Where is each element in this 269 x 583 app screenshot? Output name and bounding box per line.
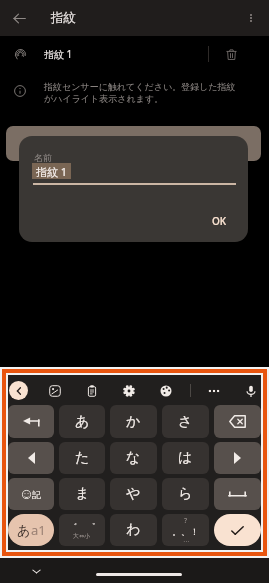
button[interactable]: Cursor right (214, 442, 261, 474)
staticText: ? (184, 516, 188, 526)
staticText: 指紋センサーに触れてください。登録した指紋がハイライト表示されます。 (44, 81, 240, 104)
staticText: た (75, 449, 90, 467)
staticText: OK (212, 214, 227, 228)
button[interactable]: More options (238, 0, 264, 36)
staticText: は (178, 449, 193, 467)
button[interactable]: や (110, 478, 157, 510)
staticText: か (126, 413, 141, 431)
button[interactable]: か (110, 405, 157, 438)
button[interactable]: Switch input mode (8, 514, 54, 546)
button[interactable]: は (162, 442, 209, 474)
button[interactable]: Settings (120, 382, 137, 399)
button[interactable]: た (59, 442, 105, 474)
button[interactable]: Dakuten and case (59, 514, 105, 546)
button[interactable]: Hide keyboard (26, 561, 46, 581)
staticText: 。、！ (172, 526, 199, 537)
staticText: あ (17, 522, 31, 538)
button[interactable]: ま (59, 478, 105, 510)
staticText: 記 (32, 489, 41, 500)
button[interactable]: さ (162, 405, 209, 438)
button[interactable]: わ (110, 514, 157, 546)
staticText: 指紋 1 (44, 47, 73, 61)
button[interactable]: Clipboard (83, 382, 100, 399)
button[interactable]: Themes (157, 382, 174, 399)
staticText: ま (75, 485, 90, 503)
staticText: な (126, 449, 141, 467)
staticText: 指紋 (51, 10, 76, 26)
staticText: ゛ ゜ (68, 520, 96, 532)
button[interactable]: Emoji and symbols (8, 478, 54, 510)
staticText: わ (126, 521, 141, 539)
button[interactable]: Delete (209, 38, 253, 70)
button[interactable]: Delete (214, 405, 261, 438)
button[interactable]: Cursor left (8, 442, 54, 474)
button[interactable]: 指紋 1 (0, 38, 269, 70)
staticText: 指紋 1 (36, 164, 68, 179)
staticText: さ (178, 413, 193, 431)
staticText: a1 (31, 521, 46, 539)
button[interactable]: Back (0, 0, 38, 36)
button[interactable]: Voice input (242, 382, 259, 399)
staticText: ら (178, 485, 193, 503)
button[interactable]: ら (162, 478, 209, 510)
button[interactable]: Undo (8, 405, 54, 438)
button[interactable]: More (205, 382, 222, 399)
button[interactable]: Punctuation (162, 514, 209, 546)
button[interactable]: Back (9, 381, 28, 400)
staticText: ⋯ (183, 537, 189, 544)
button[interactable]: あ (59, 405, 105, 438)
staticText: 名前 (34, 152, 52, 163)
staticText: あ (75, 413, 90, 431)
staticText: 大⇔小 (73, 532, 91, 540)
staticText: や (126, 485, 141, 503)
button[interactable]: な (110, 442, 157, 474)
button[interactable]: OK (195, 209, 243, 233)
button[interactable]: Space (214, 478, 261, 510)
button[interactable]: Enter (214, 514, 261, 546)
button[interactable]: Stickers (46, 382, 63, 399)
